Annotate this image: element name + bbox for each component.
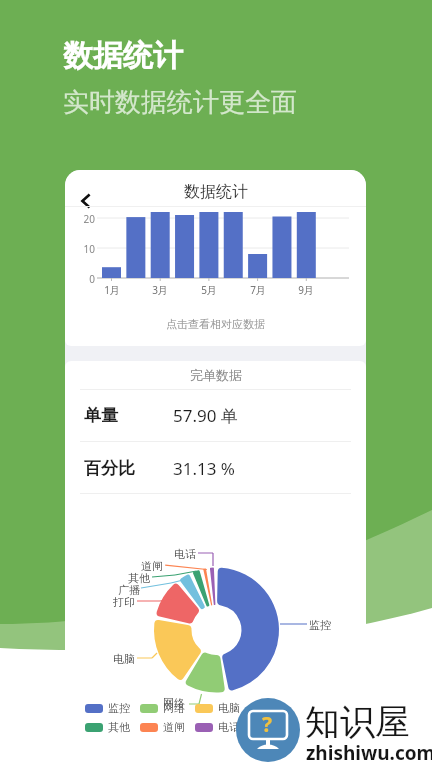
staticText: 单量	[84, 405, 118, 426]
staticText: ?	[262, 710, 273, 739]
staticText: 31.13 %	[173, 457, 235, 480]
staticText: 电脑	[113, 652, 135, 666]
button[interactable]: 网络	[140, 701, 185, 715]
staticText: 道闸	[163, 720, 185, 734]
staticText: 广播	[118, 583, 140, 597]
staticText: 网络	[163, 696, 185, 710]
button[interactable]: 电脑	[195, 701, 240, 715]
button[interactable]: 监控	[85, 701, 130, 715]
staticText: 电脑	[218, 701, 240, 715]
staticText: 网络	[163, 701, 185, 715]
staticText: 20	[75, 212, 95, 226]
staticText: 实时数据统计更全面	[63, 86, 297, 119]
staticText: 监控	[309, 618, 331, 632]
staticText: 57.90 单	[173, 404, 238, 427]
staticText: 7月	[246, 283, 270, 297]
staticText: 9月	[294, 283, 318, 297]
staticText: 知识屋	[305, 700, 410, 744]
staticText: zhishiwu.com	[306, 740, 432, 766]
staticText: 监控	[108, 701, 130, 715]
staticText: 完单数据	[190, 367, 242, 383]
button[interactable]: 其他	[85, 720, 130, 734]
staticText: 电话	[174, 547, 196, 561]
staticText: 其他	[108, 720, 130, 734]
staticText: 其他	[128, 571, 150, 585]
staticText: 道闸	[141, 559, 163, 573]
staticText: 百分比	[84, 458, 135, 479]
button[interactable]: Back	[69, 178, 101, 210]
button[interactable]: 电话	[195, 720, 240, 734]
staticText: 电话	[218, 720, 240, 734]
button[interactable]: 百分比	[65, 442, 366, 494]
staticText: 点击查看相对应数据	[166, 317, 265, 331]
button[interactable]: 单量	[65, 389, 366, 441]
staticText: 10	[75, 242, 95, 256]
staticText: 1月	[100, 283, 124, 297]
staticText: 3月	[148, 283, 172, 297]
staticText: 打印	[113, 595, 135, 609]
staticText: 数据统计	[63, 37, 183, 75]
staticText: 0	[75, 272, 95, 286]
staticText: 数据统计	[184, 182, 248, 202]
staticText: 5月	[197, 283, 221, 297]
button[interactable]: 道闸	[140, 720, 185, 734]
